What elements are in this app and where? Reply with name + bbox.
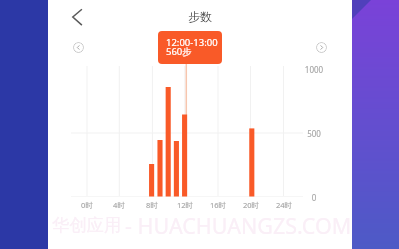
staticText: 560步 <box>166 45 192 58</box>
button[interactable]: Back <box>66 3 92 31</box>
button[interactable] <box>352 0 399 249</box>
staticText: 步数 <box>170 9 230 24</box>
button[interactable]: 12:00-13:00 <box>158 31 222 64</box>
staticText: 0时 <box>72 200 102 210</box>
staticText: 4时 <box>104 200 134 210</box>
staticText: 1000 <box>294 64 334 75</box>
staticText: 12时 <box>170 200 200 210</box>
staticText: 16时 <box>203 200 233 210</box>
button[interactable]: Next day <box>316 42 327 53</box>
staticText: 0 <box>294 192 334 203</box>
staticText: 20时 <box>236 200 266 210</box>
staticText: 500 <box>294 128 334 139</box>
staticText: 8时 <box>137 200 167 210</box>
staticText: 华创应用 <box>52 214 122 236</box>
staticText: - HUACHUANGZS.COM <box>125 211 352 240</box>
staticText: 24时 <box>269 200 299 210</box>
button[interactable]: Previous day <box>73 42 84 53</box>
button[interactable]: 步数 <box>170 9 230 24</box>
staticText: 12:00-13:00 <box>166 36 218 49</box>
